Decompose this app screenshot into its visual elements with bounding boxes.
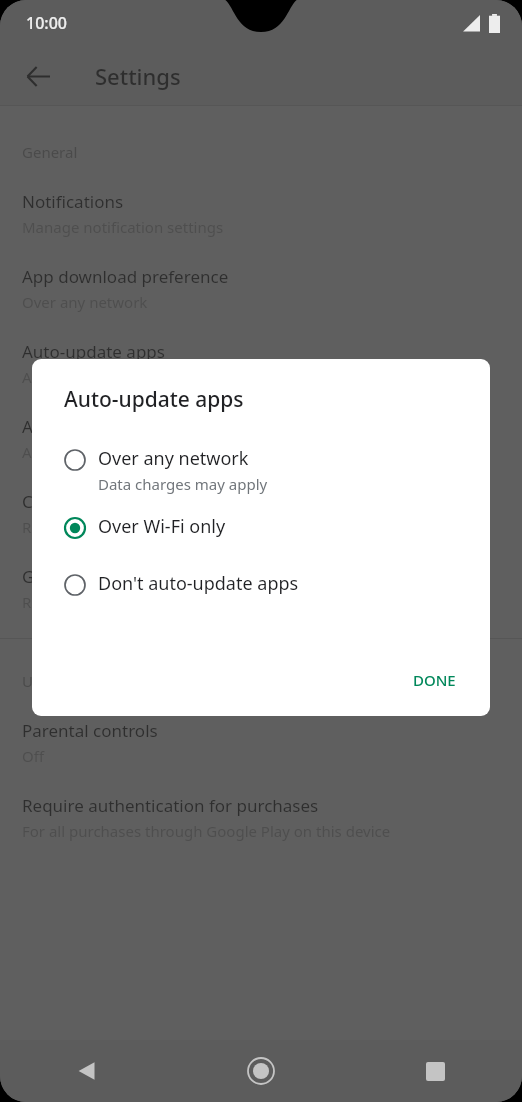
button[interactable]: Notifications	[0, 166, 522, 241]
button[interactable]: App download preference	[0, 241, 522, 316]
button[interactable]: Clear local search history	[0, 466, 522, 541]
staticText: Over any network	[22, 292, 148, 312]
staticText: Don't auto-update apps	[98, 571, 299, 596]
staticText: App download preference	[22, 265, 229, 288]
staticText: Notifications	[22, 190, 124, 213]
button[interactable]: Auto-play videos	[0, 391, 522, 466]
staticText: General	[22, 142, 78, 162]
button[interactable]: Over Wi-Fi only	[32, 508, 490, 565]
button[interactable]: Get local app recommendations	[0, 541, 522, 616]
button[interactable]: Back	[14, 52, 62, 100]
button[interactable]: Recent apps	[348, 1040, 522, 1102]
staticText: Require authentication for purchases	[22, 794, 319, 817]
staticText: Auto-update apps	[64, 385, 244, 414]
button[interactable]: Don't auto-update apps	[32, 565, 490, 622]
staticText: Auto-play videos	[22, 415, 155, 438]
staticText: Off	[22, 746, 45, 766]
staticText: Parental controls	[22, 719, 158, 742]
button[interactable]: Auto-update apps	[0, 316, 522, 391]
staticText: User controls	[22, 671, 116, 691]
staticText: Auto-play videos over Wi-Fi only	[22, 442, 246, 462]
staticText: Data charges may apply	[98, 474, 268, 494]
button[interactable]: Parental controls	[0, 695, 522, 770]
button[interactable]: Over any network	[32, 440, 490, 508]
staticText: Remove searches you've done on Google Pl…	[22, 517, 344, 537]
staticText: For all purchases through Google Play on…	[22, 821, 391, 841]
staticText: DONE	[413, 670, 456, 690]
button[interactable]: Require authentication for purchases	[0, 770, 522, 845]
staticText: Manage notification settings	[22, 217, 224, 237]
staticText: Auto-update apps over Wi-Fi only	[22, 367, 256, 387]
staticText: Over Wi-Fi only	[98, 514, 226, 539]
staticText: Get local app recommendations	[22, 565, 277, 588]
staticText: 10:00	[26, 12, 67, 34]
button[interactable]: DONE	[399, 660, 470, 700]
staticText: Settings	[95, 61, 181, 91]
staticText: Recommended apps appear in your app list…	[22, 592, 336, 612]
button[interactable]: Back	[0, 1040, 174, 1102]
button[interactable]: Home	[174, 1040, 348, 1102]
staticText: Auto-update apps	[22, 340, 165, 363]
staticText: Clear local search history	[22, 490, 222, 513]
staticText: Over any network	[98, 446, 249, 471]
